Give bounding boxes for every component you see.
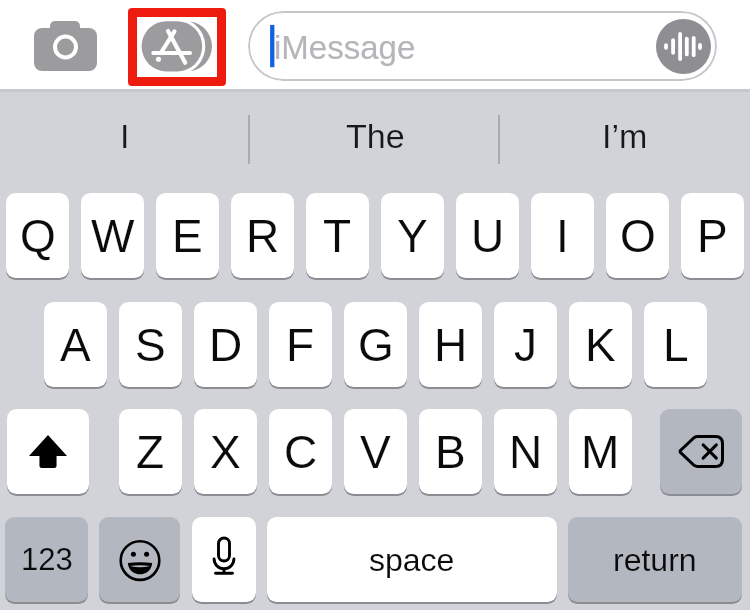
staticText: 123 bbox=[21, 542, 73, 577]
button[interactable]: Shift bbox=[7, 409, 89, 494]
staticText: Q bbox=[20, 210, 56, 261]
button[interactable]: H bbox=[419, 302, 482, 387]
button[interactable]: R bbox=[231, 193, 294, 278]
staticText: T bbox=[323, 210, 352, 261]
staticText: G bbox=[358, 319, 394, 370]
staticText: R bbox=[246, 210, 280, 261]
staticText: P bbox=[697, 210, 728, 261]
staticText: The bbox=[346, 117, 405, 155]
staticText: J bbox=[514, 319, 537, 370]
staticText: U bbox=[471, 210, 505, 261]
button[interactable]: The bbox=[250, 89, 500, 192]
button[interactable]: Camera bbox=[18, 12, 114, 78]
button[interactable]: K bbox=[569, 302, 632, 387]
button[interactable]: W bbox=[81, 193, 144, 278]
button[interactable]: Backspace bbox=[660, 409, 742, 494]
button[interactable]: A bbox=[44, 302, 107, 387]
staticText: A bbox=[60, 319, 91, 370]
button[interactable]: E bbox=[156, 193, 219, 278]
button[interactable]: 123 bbox=[5, 517, 88, 602]
staticText: L bbox=[663, 319, 689, 370]
staticText: V bbox=[360, 426, 391, 477]
button[interactable]: S bbox=[119, 302, 182, 387]
button[interactable]: I’m bbox=[500, 89, 750, 192]
staticText: C bbox=[284, 426, 318, 477]
button[interactable]: G bbox=[344, 302, 407, 387]
staticText: Y bbox=[397, 210, 428, 261]
staticText: O bbox=[620, 210, 656, 261]
staticText: D bbox=[209, 319, 243, 370]
button[interactable]: return bbox=[568, 517, 742, 602]
button[interactable]: space bbox=[267, 517, 557, 602]
button[interactable]: Y bbox=[381, 193, 444, 278]
button[interactable]: Emoji bbox=[99, 517, 180, 602]
staticText: I bbox=[556, 210, 569, 261]
button[interactable]: I bbox=[531, 193, 594, 278]
staticText: M bbox=[581, 426, 620, 477]
button[interactable]: T bbox=[306, 193, 369, 278]
staticText: iMessage bbox=[274, 29, 416, 66]
button[interactable]: App Store bbox=[137, 17, 217, 77]
button[interactable]: M bbox=[569, 409, 632, 494]
button[interactable]: B bbox=[419, 409, 482, 494]
button[interactable]: V bbox=[344, 409, 407, 494]
button[interactable]: Dictate bbox=[192, 517, 256, 602]
button[interactable]: Audio message bbox=[656, 19, 711, 74]
staticText: N bbox=[509, 426, 543, 477]
staticText: K bbox=[585, 319, 616, 370]
button[interactable]: I bbox=[0, 89, 250, 192]
button[interactable]: C bbox=[269, 409, 332, 494]
button[interactable]: D bbox=[194, 302, 257, 387]
button[interactable]: X bbox=[194, 409, 257, 494]
staticText: W bbox=[91, 210, 135, 261]
button[interactable]: Q bbox=[6, 193, 69, 278]
staticText: return bbox=[613, 542, 697, 578]
staticText: I bbox=[120, 117, 130, 155]
button[interactable]: O bbox=[606, 193, 669, 278]
button[interactable]: P bbox=[681, 193, 744, 278]
staticText: H bbox=[434, 319, 468, 370]
staticText: X bbox=[210, 426, 241, 477]
button[interactable]: iMessage bbox=[248, 11, 717, 81]
button[interactable]: N bbox=[494, 409, 557, 494]
button[interactable]: Z bbox=[119, 409, 182, 494]
button[interactable]: F bbox=[269, 302, 332, 387]
staticText: B bbox=[435, 426, 466, 477]
staticText: E bbox=[172, 210, 203, 261]
staticText: I’m bbox=[602, 117, 648, 155]
button[interactable]: U bbox=[456, 193, 519, 278]
button[interactable]: J bbox=[494, 302, 557, 387]
staticText: F bbox=[286, 319, 315, 370]
staticText: Z bbox=[136, 426, 165, 477]
staticText: space bbox=[369, 542, 455, 578]
staticText: S bbox=[135, 319, 166, 370]
button[interactable]: L bbox=[644, 302, 707, 387]
